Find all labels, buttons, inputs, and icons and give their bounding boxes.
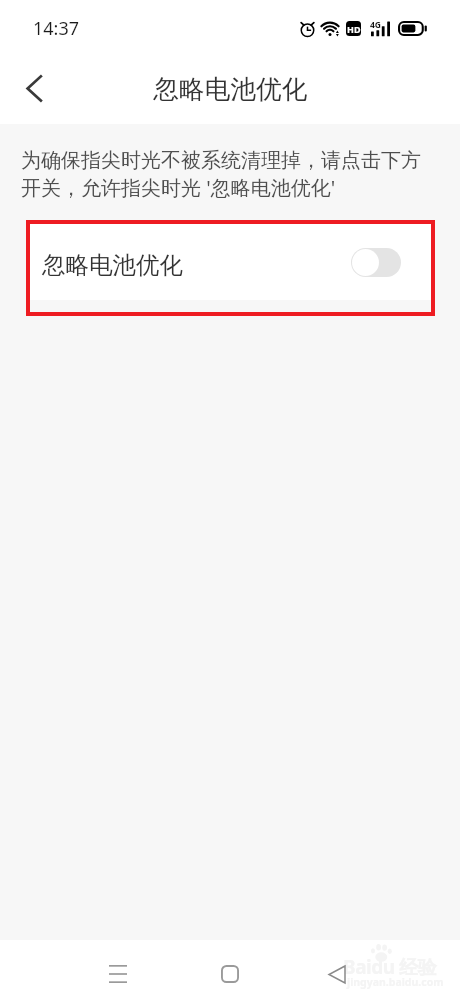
staticText: 4G (370, 19, 382, 31)
button[interactable]: Home (202, 946, 258, 1002)
button[interactable]: Back (309, 946, 365, 1002)
staticText: Baidu 经验 (343, 954, 436, 980)
button[interactable]: 忽略电池优化 (26, 224, 435, 300)
button[interactable]: Back (6, 60, 62, 116)
button[interactable]: Ignore battery optimization switch (351, 248, 401, 277)
staticText: jingyan.baidu.com (347, 975, 444, 989)
staticText: 为确保指尖时光不被系统清理掉，请点击下方开关，允许指尖时光 '忽略电池优化' (21, 148, 430, 201)
staticText: 14:37 (33, 16, 80, 41)
staticText: 忽略电池优化 (42, 250, 183, 280)
button[interactable]: Recent apps (90, 946, 146, 1002)
staticText: HD (347, 23, 361, 35)
staticText: 忽略电池优化 (153, 73, 308, 106)
